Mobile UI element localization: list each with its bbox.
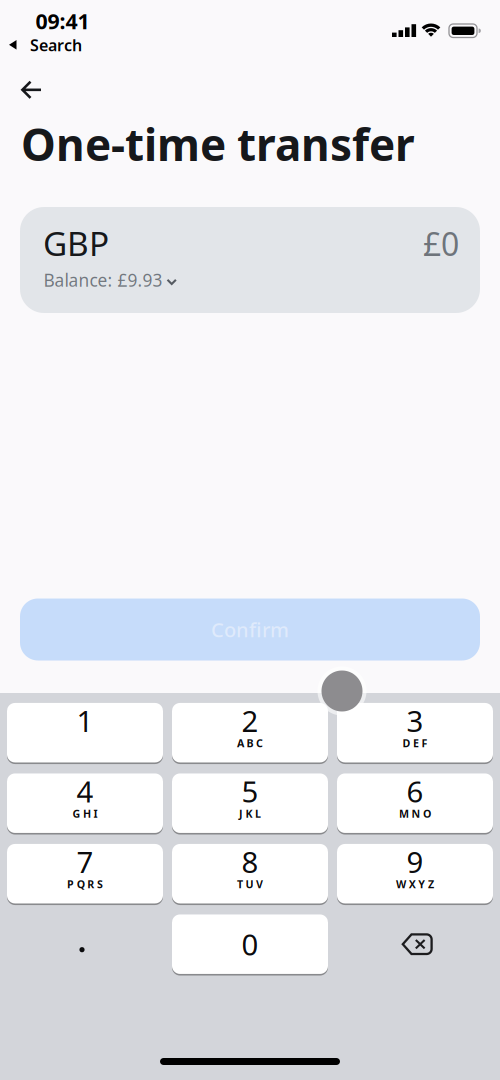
staticText: GBP <box>43 221 109 265</box>
staticText: B <box>246 736 253 750</box>
staticText: 2 <box>241 701 258 740</box>
staticText: V <box>256 877 263 891</box>
staticText: N <box>411 807 420 821</box>
staticText: T <box>237 877 243 891</box>
staticText: H <box>83 807 91 821</box>
staticText: 8 <box>241 842 258 881</box>
button[interactable]: GBP <box>20 207 480 313</box>
staticText: F <box>422 736 428 750</box>
staticText: 09:41 <box>35 7 89 35</box>
button[interactable]: 3 <box>337 702 493 763</box>
staticText: Q <box>77 877 85 891</box>
staticText: 3 <box>406 701 423 740</box>
button[interactable]: 0 <box>172 914 328 975</box>
button[interactable]: 8 <box>172 843 328 904</box>
staticText: 7 <box>76 842 93 881</box>
staticText: 5 <box>241 772 258 811</box>
staticText: M <box>399 807 409 821</box>
button[interactable] <box>339 914 495 975</box>
button[interactable]: 4 <box>7 773 163 834</box>
staticText: U <box>245 877 253 891</box>
button[interactable]: 9 <box>337 843 493 904</box>
staticText: P <box>67 877 74 891</box>
staticText: L <box>255 807 261 821</box>
staticText: Search <box>30 34 82 56</box>
staticText: R <box>87 877 94 891</box>
button[interactable] <box>7 914 163 975</box>
staticText: D <box>402 736 410 750</box>
staticText: 1 <box>76 701 93 740</box>
staticText: Y <box>418 877 425 891</box>
button[interactable]: 7 <box>7 843 163 904</box>
staticText: Balance: £9.93 <box>43 268 162 291</box>
staticText: X <box>409 877 416 891</box>
staticText: J <box>239 807 243 821</box>
staticText: G <box>72 807 80 821</box>
button[interactable]: 2 <box>172 702 328 763</box>
button[interactable]: 1 <box>7 702 163 763</box>
staticText: K <box>245 807 252 821</box>
staticText: O <box>423 807 431 821</box>
button[interactable] <box>11 72 51 108</box>
button[interactable]: 5 <box>172 773 328 834</box>
staticText: 6 <box>406 772 423 811</box>
staticText: S <box>97 877 103 891</box>
staticText: One-time transfer <box>21 115 415 173</box>
staticText: W <box>396 877 406 891</box>
staticText: C <box>256 736 263 750</box>
staticText: Confirm <box>211 616 289 643</box>
staticText: E <box>413 736 419 750</box>
staticText: A <box>237 736 244 750</box>
staticText: 4 <box>76 772 93 811</box>
staticText: 9 <box>406 842 423 881</box>
staticText: Z <box>428 877 434 891</box>
button[interactable]: 6 <box>337 773 493 834</box>
staticText: I <box>94 807 98 821</box>
staticText: 0 <box>241 925 258 964</box>
button[interactable]: Search <box>9 34 82 56</box>
button[interactable]: Confirm <box>20 598 480 660</box>
staticText: £0 <box>423 222 459 265</box>
